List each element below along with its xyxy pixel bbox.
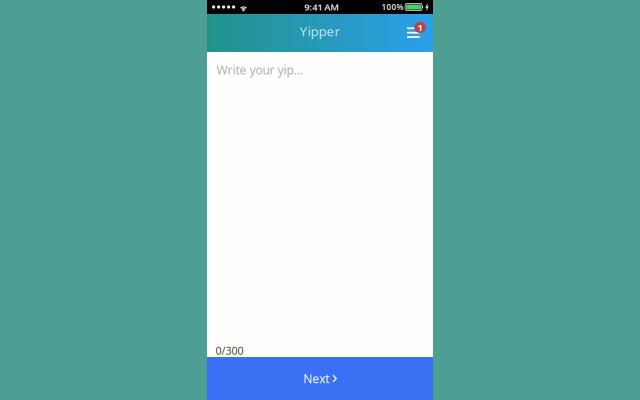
staticText: Write your yip... xyxy=(216,62,302,78)
staticText: 0/300 xyxy=(215,344,243,358)
button[interactable]: Next xyxy=(207,357,433,400)
staticText: Yipper xyxy=(299,22,340,40)
staticText: 9:41 AM xyxy=(304,1,339,13)
button[interactable]: Write your yip... xyxy=(207,52,433,344)
staticText: 1 xyxy=(417,21,422,33)
button[interactable]: Menu, 1 notification xyxy=(407,14,425,52)
staticText: 100% xyxy=(382,2,404,12)
staticText: Next xyxy=(303,370,329,386)
